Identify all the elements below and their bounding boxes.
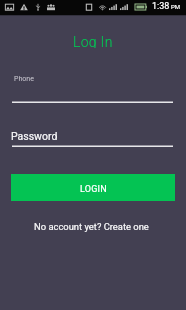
staticText: Phone (14, 75, 34, 83)
staticText: No account yet? Create one (34, 221, 149, 232)
button[interactable]: No account yet? Create one (0, 219, 184, 233)
staticText: 1:38 (152, 1, 170, 12)
staticText: Password (11, 130, 58, 142)
staticText: LOGIN (80, 184, 107, 195)
staticText: Log In (73, 34, 113, 48)
staticText: PM (171, 3, 181, 10)
button[interactable]: LOGIN (11, 174, 175, 201)
